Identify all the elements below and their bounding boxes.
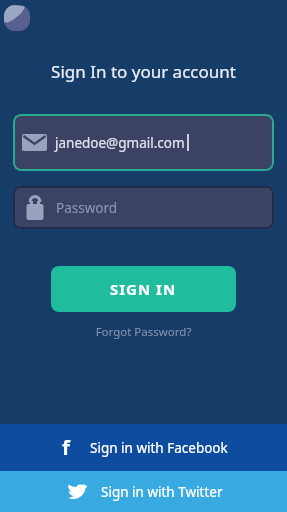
button[interactable]: f (0, 424, 287, 471)
staticText: SIGN IN (110, 279, 177, 299)
button[interactable]: SIGN IN (51, 266, 236, 312)
staticText: Sign in with Facebook (90, 439, 228, 457)
button[interactable]: Sign in with Twitter (0, 471, 287, 512)
button[interactable]: Forgot Password? (0, 324, 287, 340)
staticText: f (62, 434, 70, 461)
staticText: Sign In to your account (0, 60, 287, 83)
button[interactable]: Password (13, 186, 274, 229)
staticText: Sign in with Twitter (101, 483, 223, 501)
button[interactable]: janedoe@gmail.com (13, 114, 274, 171)
staticText: Password (56, 199, 118, 217)
staticText: janedoe@gmail.com (55, 134, 185, 152)
